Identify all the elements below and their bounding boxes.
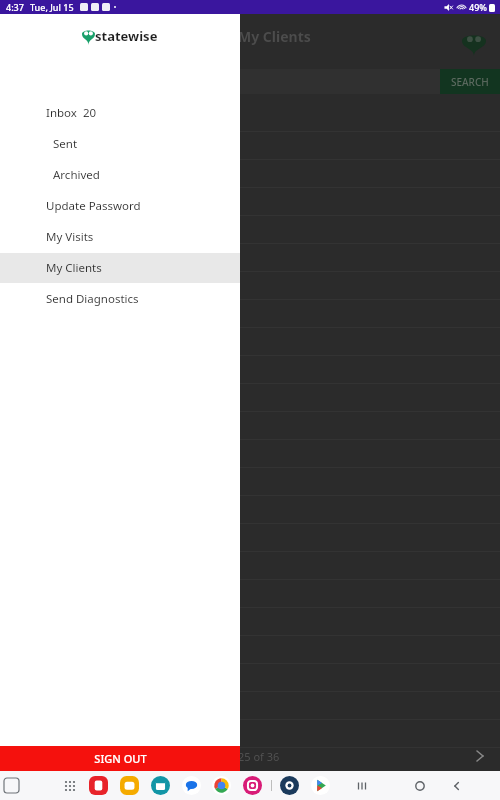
button[interactable]: Next page <box>470 746 490 766</box>
button[interactable]: Recents <box>355 779 369 793</box>
button[interactable] <box>0 664 500 692</box>
button[interactable] <box>0 412 500 440</box>
staticText: Sent <box>53 136 78 152</box>
button[interactable]: SEARCH <box>440 69 500 94</box>
staticText: statewise <box>95 27 158 45</box>
button[interactable]: App 1 <box>120 776 139 795</box>
button[interactable] <box>0 188 500 216</box>
button[interactable]: My Clients <box>0 253 240 283</box>
button[interactable]: Home <box>413 779 427 793</box>
button[interactable]: SIGN OUT <box>0 746 240 771</box>
button[interactable]: App 6 <box>280 776 299 795</box>
button[interactable]: Apps <box>64 780 76 792</box>
staticText: 49% <box>469 1 487 13</box>
button[interactable] <box>0 496 500 524</box>
staticText: Inbox <box>46 105 77 121</box>
button[interactable] <box>0 580 500 608</box>
button[interactable]: Statewise <box>462 32 486 56</box>
button[interactable] <box>0 244 500 272</box>
staticText: Tue, Jul 15 <box>30 1 74 13</box>
button[interactable] <box>0 216 500 244</box>
button[interactable] <box>0 272 500 300</box>
staticText: 20 <box>83 105 97 121</box>
staticText: My Visits <box>46 229 94 245</box>
button[interactable]: App 4 <box>212 776 231 795</box>
staticText: Send Diagnostics <box>46 291 139 307</box>
button[interactable] <box>0 720 500 748</box>
button[interactable] <box>0 468 500 496</box>
button[interactable] <box>0 692 500 720</box>
button[interactable] <box>0 384 500 412</box>
button[interactable]: Back <box>450 779 464 793</box>
staticText: 4:37 <box>6 1 24 13</box>
button[interactable]: Sent <box>0 129 240 159</box>
button[interactable] <box>0 524 500 552</box>
button[interactable] <box>0 160 500 188</box>
button[interactable]: Send Diagnostics <box>0 284 240 314</box>
staticText: SIGN OUT <box>94 751 147 766</box>
button[interactable]: Recent app <box>4 778 19 793</box>
button[interactable] <box>0 356 500 384</box>
button[interactable]: My Visits <box>0 222 240 252</box>
button[interactable] <box>0 608 500 636</box>
button[interactable] <box>0 328 500 356</box>
button[interactable] <box>0 552 500 580</box>
button[interactable] <box>0 300 500 328</box>
button[interactable] <box>0 132 500 160</box>
staticText: SEARCH <box>451 75 489 89</box>
button[interactable]: App 3 <box>182 776 201 795</box>
button[interactable]: App 0 <box>89 776 108 795</box>
staticText: 25 of 36 <box>238 749 280 764</box>
staticText: Update Password <box>46 198 141 214</box>
button[interactable] <box>0 440 500 468</box>
button[interactable]: App 5 <box>243 776 262 795</box>
staticText: My Clients <box>46 260 102 276</box>
staticText: My Clients <box>238 27 311 46</box>
button[interactable]: Inbox <box>0 98 240 128</box>
button[interactable] <box>0 104 500 132</box>
button[interactable]: Update Password <box>0 191 240 221</box>
button[interactable]: App 7 <box>311 776 330 795</box>
staticText: Archived <box>53 167 100 183</box>
button[interactable]: Archived <box>0 160 240 190</box>
button[interactable] <box>0 636 500 664</box>
button[interactable]: App 2 <box>151 776 170 795</box>
